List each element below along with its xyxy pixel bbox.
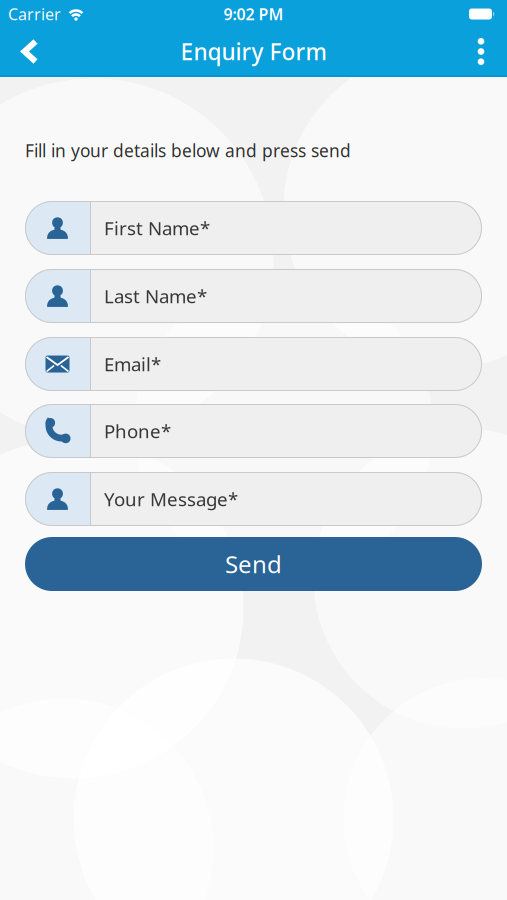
staticText: Your Message*: [104, 487, 238, 511]
button[interactable]: Email*: [25, 337, 482, 391]
button[interactable]: More options: [461, 29, 501, 73]
staticText: First Name*: [104, 216, 210, 240]
button[interactable]: Your Message*: [25, 472, 482, 526]
button[interactable]: Phone*: [25, 404, 482, 458]
staticText: Send: [225, 548, 282, 580]
staticText: Phone*: [104, 419, 171, 443]
button[interactable]: First Name*: [25, 201, 482, 255]
staticText: Last Name*: [104, 284, 207, 308]
button[interactable]: Last Name*: [25, 269, 482, 323]
staticText: Enquiry Form: [180, 36, 326, 66]
button[interactable]: Send: [25, 537, 482, 591]
staticText: Fill in your details below and press sen…: [25, 139, 351, 162]
staticText: Email*: [104, 352, 161, 376]
staticText: 9:02 PM: [223, 3, 283, 25]
button[interactable]: Back: [8, 29, 52, 73]
staticText: Carrier: [8, 3, 61, 25]
